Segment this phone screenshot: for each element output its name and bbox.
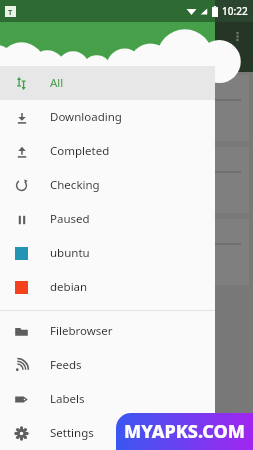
button[interactable]: ubuntu-20.04-desktop — [4, 75, 249, 141]
button[interactable]: Feeds — [0, 348, 215, 382]
staticText: MYAPKS.COM — [124, 419, 245, 444]
staticText: ubuntu — [50, 245, 90, 261]
staticText: Down: 23.7 kB/s — [12, 190, 76, 202]
staticText: Peers: 6/13 — [12, 106, 57, 118]
button[interactable]: All — [0, 66, 215, 100]
button[interactable]: Checking — [0, 168, 215, 202]
button[interactable]: archlinux-2022.iso — [4, 219, 249, 285]
staticText: Settings — [50, 425, 94, 441]
staticText: Checking — [50, 177, 100, 193]
button[interactable]: Labels — [0, 382, 215, 416]
button[interactable]: ubuntu — [0, 236, 215, 270]
staticText: debian-11.3.0-amd64 — [12, 152, 113, 166]
button[interactable]: Completed — [0, 134, 215, 168]
staticText: Downloading — [50, 109, 122, 125]
staticText: Peers: 60/250 — [12, 178, 67, 190]
staticText: 10:22 — [222, 4, 248, 18]
staticText: debian — [50, 279, 88, 295]
staticText: Peers: 29/250 — [12, 250, 67, 262]
staticText: Paused — [50, 211, 90, 227]
staticText: Down: 7 B/s — [12, 118, 60, 130]
staticText: All — [50, 75, 64, 91]
staticText: T — [8, 7, 13, 17]
button[interactable]: More options — [227, 26, 247, 46]
button[interactable]: MYAPKS.COM watermark — [116, 413, 253, 450]
button[interactable]: debian — [0, 270, 215, 304]
button[interactable]: Filebrowser — [0, 314, 215, 348]
button[interactable]: Sort — [200, 26, 220, 46]
staticText: Filebrowser — [50, 323, 113, 339]
button[interactable]: Paused — [0, 202, 215, 236]
button[interactable]: Downloading — [0, 100, 215, 134]
staticText: Free space: 3.4 GB — [12, 55, 90, 67]
staticText: ubuntu-20.04-desktop — [12, 80, 118, 94]
staticText: Labels — [50, 391, 85, 407]
staticText: Completed — [50, 143, 110, 159]
button[interactable]: Settings — [0, 416, 215, 450]
button[interactable]: debian-11.3.0-amd64 — [4, 147, 249, 213]
staticText: Feeds — [50, 357, 82, 373]
